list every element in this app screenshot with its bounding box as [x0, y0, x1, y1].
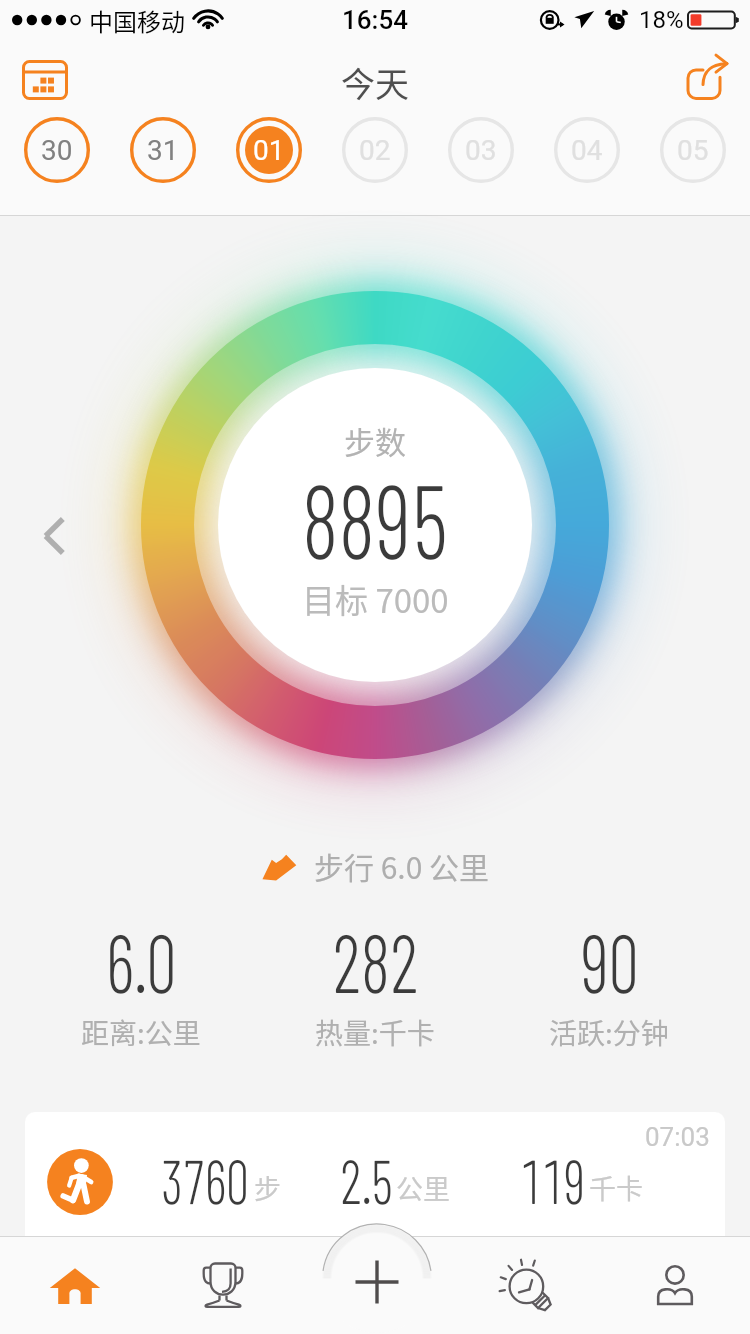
staticText: 31 [147, 134, 179, 167]
staticText: 步行 6.0 公里 [314, 844, 490, 887]
button[interactable]: Home [0, 1236, 150, 1334]
button[interactable]: Add [322, 1224, 432, 1334]
button[interactable]: 01 [236, 117, 302, 183]
button[interactable]: Previous [26, 508, 82, 564]
staticText: 03 [465, 134, 497, 167]
staticText: 90 [580, 911, 638, 1009]
button[interactable]: 30 [24, 117, 90, 183]
staticText: 距离:公里 [81, 1012, 201, 1053]
staticText: 119 [520, 1142, 586, 1216]
staticText: 步 [254, 1168, 281, 1207]
staticText: 千卡 [589, 1168, 643, 1207]
staticText: 活跃:分钟 [549, 1012, 669, 1053]
button[interactable]: Achievements [150, 1236, 300, 1334]
button[interactable]: 282 [258, 911, 492, 1053]
staticText: 3760 [161, 1142, 249, 1216]
button[interactable]: Profile [600, 1236, 750, 1334]
staticText: 07:03 [645, 1122, 710, 1152]
button[interactable]: 31 [130, 117, 196, 183]
button[interactable]: Share [674, 49, 736, 111]
staticText: 热量:千卡 [315, 1012, 435, 1053]
button[interactable]: 6.0 [24, 911, 258, 1053]
staticText: 18% [639, 6, 684, 34]
staticText: 04 [571, 134, 603, 167]
staticText: 6.0 [106, 911, 176, 1009]
staticText: 05 [677, 134, 709, 167]
button[interactable]: Calendar [14, 49, 76, 111]
button[interactable]: 03 [448, 117, 514, 183]
staticText: 8895 [302, 455, 448, 580]
button[interactable]: Smart alarm [450, 1236, 600, 1334]
staticText: 02 [359, 134, 391, 167]
staticText: 公里 [396, 1168, 450, 1207]
staticText: 今天 [341, 58, 409, 107]
staticText: 16:54 [342, 5, 408, 35]
button[interactable]: 04 [554, 117, 620, 183]
staticText: 282 [332, 911, 419, 1009]
staticText: 中国移动 [89, 3, 185, 38]
staticText: 2.5 [340, 1142, 394, 1216]
button[interactable]: 07:03 [25, 1112, 725, 1236]
button[interactable]: 05 [660, 117, 726, 183]
button[interactable]: 02 [342, 117, 408, 183]
button[interactable]: 90 [492, 911, 726, 1053]
staticText: 目标 7000 [302, 575, 449, 623]
staticText: 步数 [344, 418, 406, 463]
staticText: 01 [253, 134, 285, 167]
staticText: 30 [41, 134, 73, 167]
